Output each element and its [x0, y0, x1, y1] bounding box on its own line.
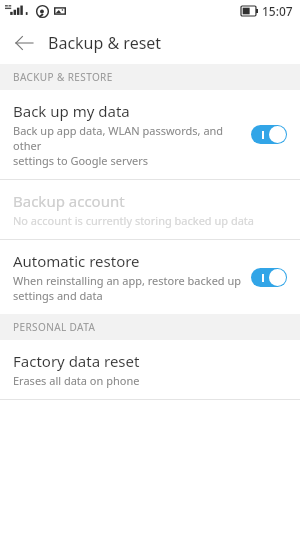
staticText: Automatic restore — [13, 251, 140, 271]
staticText: Backup & reset — [48, 32, 162, 54]
button[interactable]: Back up my data — [0, 90, 300, 179]
button[interactable]: Backup account — [0, 180, 300, 239]
staticText: No account is currently storing backed u… — [13, 213, 254, 228]
staticText: PERSONAL DATA — [13, 320, 96, 334]
staticText: BACKUP & RESTORE — [13, 70, 113, 84]
staticText: 15:07 — [262, 3, 293, 19]
button[interactable]: Toggle — [251, 268, 287, 287]
staticText: Back up my data — [13, 101, 130, 121]
staticText: Backup account — [13, 191, 125, 211]
button[interactable]: Back — [6, 25, 42, 61]
button[interactable]: Factory data reset — [0, 340, 300, 399]
button[interactable]: Automatic restore — [0, 240, 300, 314]
staticText: When reinstalling an app, restore backed… — [13, 273, 242, 303]
staticText: Factory data reset — [13, 351, 140, 371]
button[interactable]: Toggle — [251, 125, 287, 144]
staticText: Back up app data, WLAN passwords, and ot… — [13, 123, 243, 168]
staticText: Erases all data on phone — [13, 373, 140, 388]
